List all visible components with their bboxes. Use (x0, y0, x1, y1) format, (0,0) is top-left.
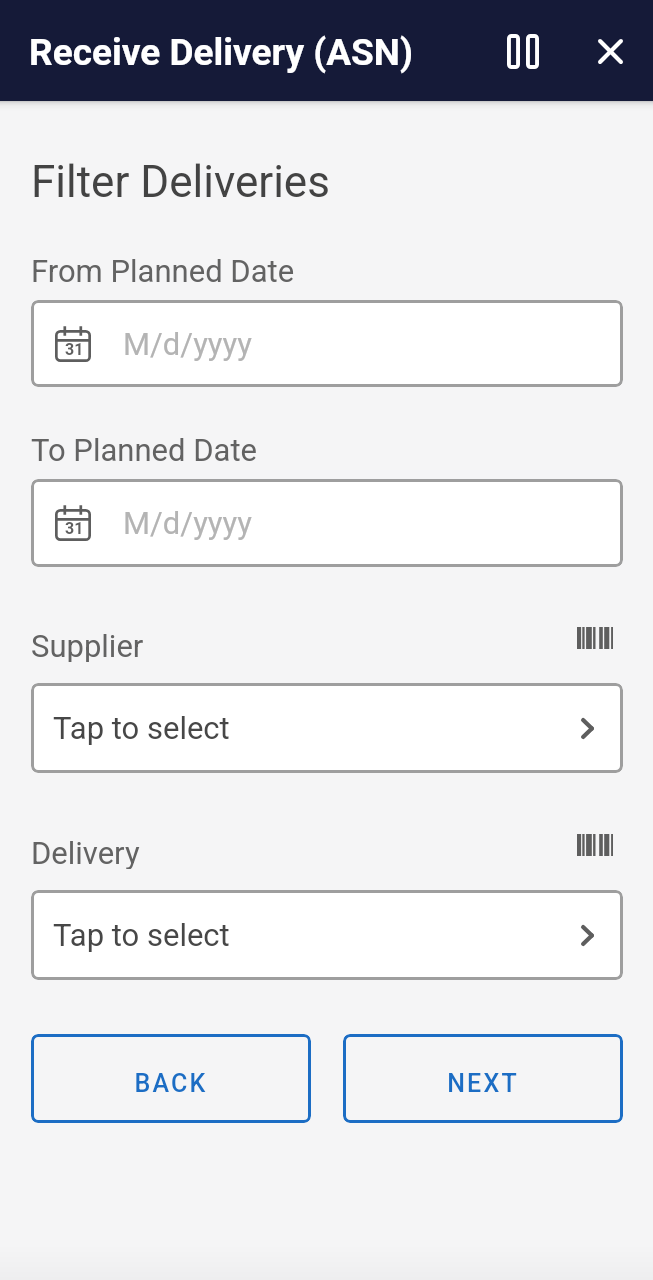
staticText: Tap to select (53, 917, 230, 953)
button[interactable]: Pause (487, 15, 559, 87)
button[interactable]: Scan barcode (569, 621, 621, 655)
button[interactable]: NEXT (343, 1034, 623, 1123)
staticText: M/d/yyyy (123, 505, 252, 541)
staticText: NEXT (447, 1069, 519, 1098)
staticText: Supplier (31, 628, 144, 662)
button[interactable]: 31 (31, 300, 623, 387)
button[interactable]: Scan barcode (569, 828, 621, 862)
button[interactable]: 31 (31, 479, 623, 567)
staticText: M/d/yyyy (123, 326, 252, 362)
button[interactable]: Close (574, 15, 646, 87)
staticText: 31 (65, 519, 84, 538)
button[interactable]: BACK (31, 1034, 311, 1123)
button[interactable]: Tap to select (31, 890, 623, 980)
staticText: BACK (134, 1069, 208, 1098)
staticText: From Planned Date (31, 253, 295, 287)
staticText: To Planned Date (31, 432, 257, 466)
staticText: Tap to select (53, 710, 230, 746)
staticText: Delivery (31, 835, 140, 869)
staticText: Filter Deliveries (31, 156, 330, 208)
button[interactable]: Tap to select (31, 683, 623, 773)
staticText: 31 (65, 340, 84, 359)
staticText: Receive Delivery (ASN) (29, 31, 413, 74)
